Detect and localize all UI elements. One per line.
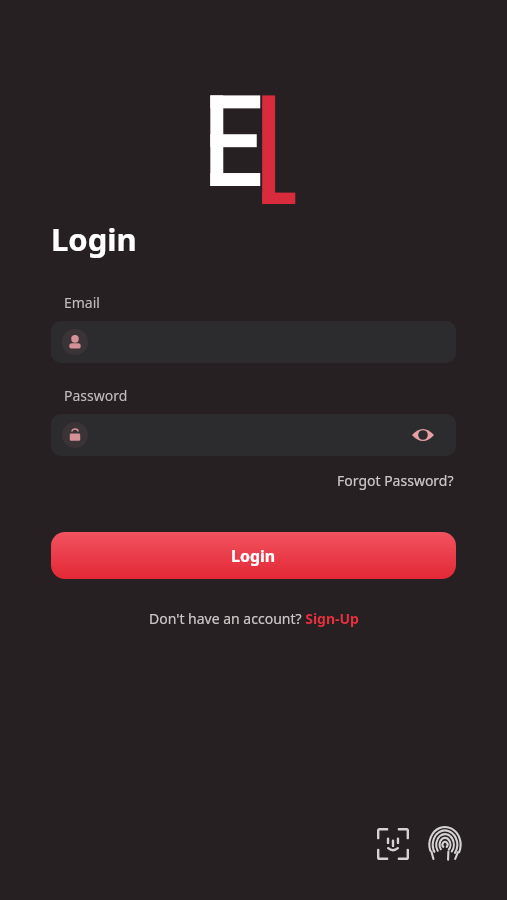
staticText: Don't have an account? Sign-Up bbox=[149, 609, 359, 628]
button[interactable]: Forgot Password? bbox=[335, 467, 456, 494]
staticText: Forgot Password? bbox=[337, 471, 454, 490]
button[interactable]: Login bbox=[51, 532, 456, 579]
button[interactable]: Show password bbox=[51, 414, 456, 456]
button[interactable]: Fingerprint login bbox=[423, 822, 467, 866]
staticText: Login bbox=[51, 218, 137, 260]
staticText: Email bbox=[64, 293, 100, 312]
staticText: Password bbox=[64, 386, 128, 405]
button[interactable]: Show password bbox=[408, 420, 438, 450]
staticText: Login bbox=[231, 545, 276, 567]
button[interactable]: Face ID login bbox=[371, 822, 415, 866]
button[interactable] bbox=[51, 321, 456, 363]
button[interactable]: Don't have an account? Sign-Up bbox=[145, 605, 363, 632]
